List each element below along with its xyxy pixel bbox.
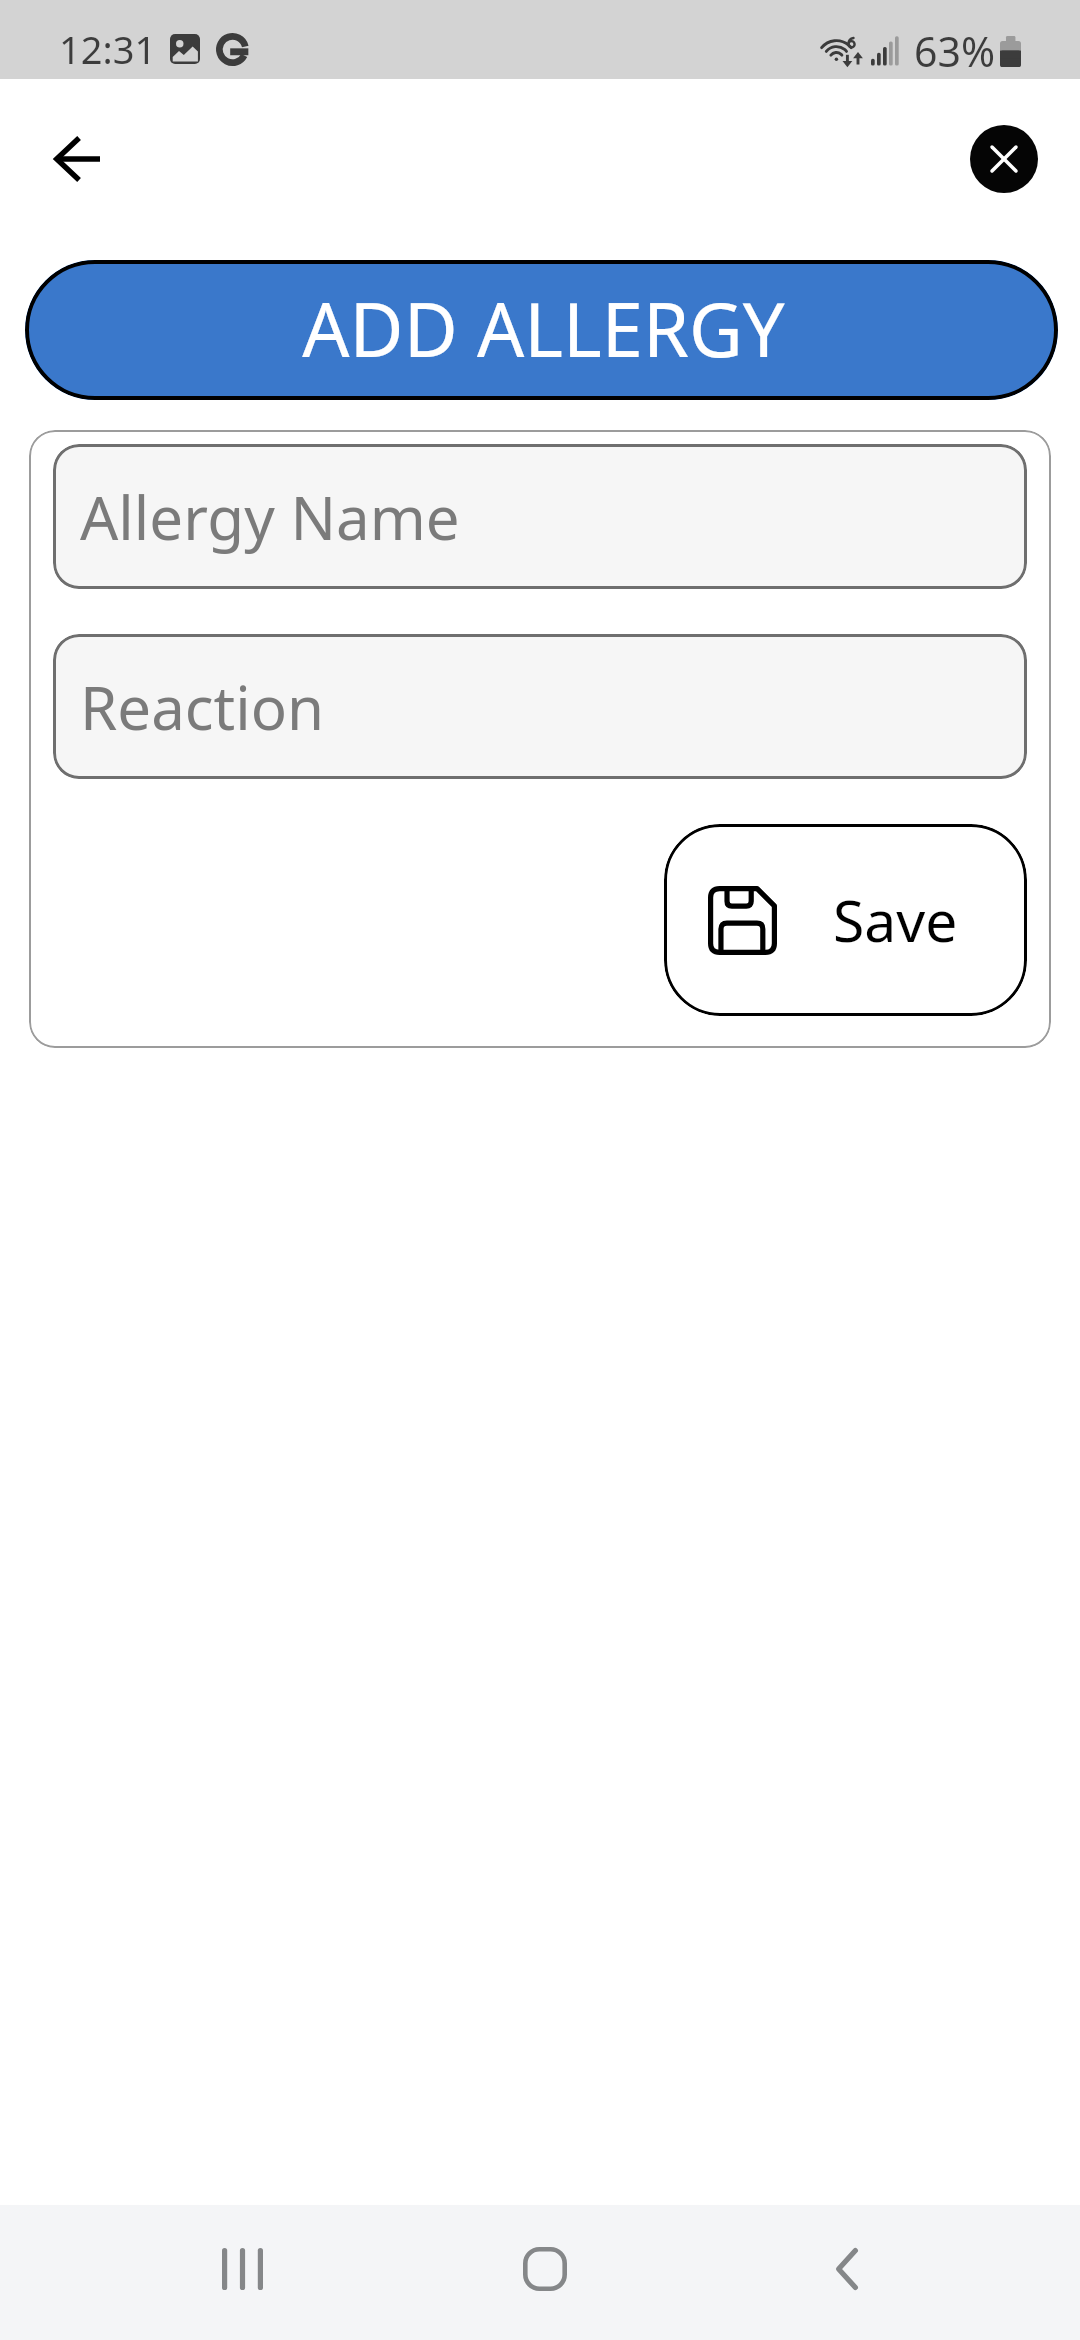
staticText: Save [833, 881, 958, 959]
button[interactable]: ADD ALLERGY [25, 260, 1058, 400]
staticText: 63% [914, 23, 995, 79]
button[interactable]: Recent apps [172, 2201, 312, 2336]
button[interactable]: Back [32, 114, 122, 204]
staticText: Reaction [80, 666, 325, 748]
staticText: ADD ALLERGY [302, 278, 785, 379]
staticText: Allergy Name [80, 476, 460, 558]
staticText: 12:31 [59, 23, 157, 75]
button[interactable]: Reaction [53, 634, 1027, 779]
button[interactable]: Close [970, 125, 1038, 193]
button[interactable]: Save [664, 824, 1027, 1016]
button[interactable]: Home [475, 2201, 615, 2336]
button[interactable]: Allergy Name [53, 444, 1027, 589]
button[interactable]: Back [777, 2201, 917, 2336]
